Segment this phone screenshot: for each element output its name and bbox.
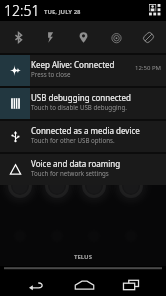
button[interactable]: Back [28,270,44,296]
button[interactable]: Location [68,21,98,53]
staticText: Touch for other USB options. [31,136,115,144]
staticText: 12:50 PM [135,64,161,72]
button[interactable]: Flashlight [35,21,65,53]
staticText: Keep Alive: Connected [31,59,115,70]
staticText: TELUS [74,253,92,261]
staticText: Voice and data roaming [31,158,121,169]
staticText: 12:51 [4,1,40,20]
button[interactable]: Voice and data roaming [0,154,166,185]
button[interactable]: Bluetooth [3,21,33,53]
button[interactable]: Hotspot [101,21,131,53]
button[interactable]: Connected as a media device [0,121,166,152]
staticText: TUE, JULY 28 [44,8,81,16]
button[interactable]: Home [74,270,95,296]
staticText: Press to close [31,70,71,78]
button[interactable]: USB debugging connected [0,88,166,119]
button[interactable]: Keep Alive: Connected [0,55,166,86]
button[interactable]: Auto rotate [133,21,163,53]
staticText: USB debugging connected [31,92,131,103]
staticText: Touch to disable USB debugging. [31,103,127,111]
staticText: Connected as a media device [31,125,140,136]
staticText: Touch for network settings [31,169,109,177]
button[interactable]: Recents [123,270,139,296]
button[interactable]: Quick settings [149,4,162,17]
